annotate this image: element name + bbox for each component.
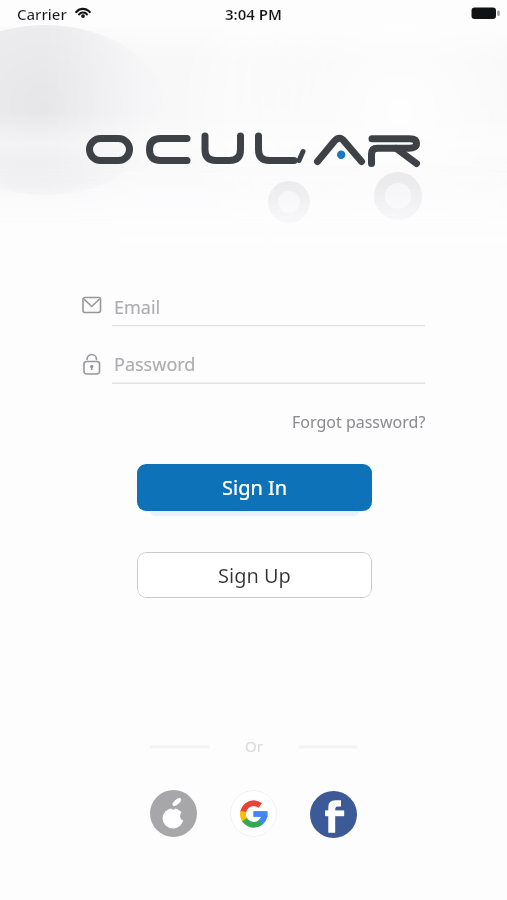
staticText: 3:04 PM	[225, 4, 282, 24]
staticText: Carrier	[17, 4, 67, 24]
button[interactable]: Email	[78, 290, 426, 326]
button[interactable]: Password	[78, 347, 426, 383]
staticText: Or	[245, 736, 263, 756]
staticText: Sign In	[222, 474, 288, 501]
button[interactable]	[310, 791, 357, 838]
staticText: Password	[114, 352, 196, 377]
button[interactable]: Sign Up	[137, 552, 372, 598]
staticText: Sign Up	[218, 562, 291, 589]
button[interactable]: Sign In	[137, 464, 372, 511]
button[interactable]	[230, 790, 277, 837]
button[interactable]	[150, 790, 197, 837]
button[interactable]: Forgot password?	[276, 409, 426, 435]
staticText: Email	[114, 295, 161, 320]
staticText: Forgot password?	[292, 411, 426, 433]
